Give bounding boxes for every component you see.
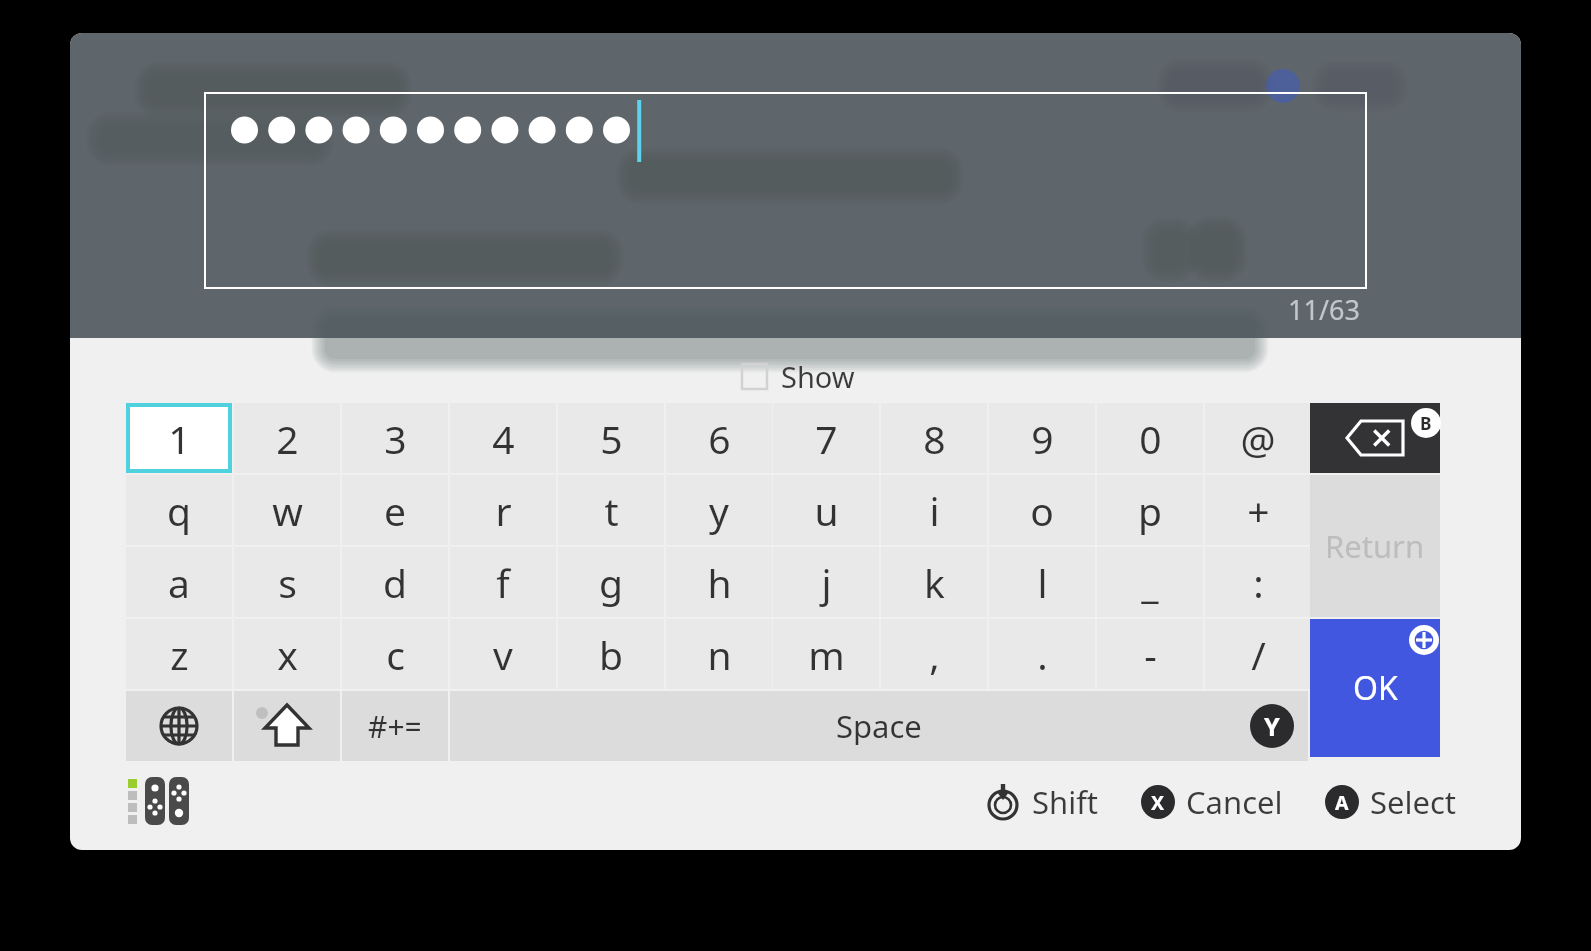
button[interactable]: h bbox=[666, 547, 772, 617]
button[interactable]: f bbox=[450, 547, 556, 617]
button[interactable]: 9 bbox=[989, 403, 1095, 473]
button[interactable]: OK bbox=[1310, 619, 1440, 757]
staticText: n bbox=[707, 628, 732, 681]
staticText: 3 bbox=[384, 412, 407, 465]
button[interactable]: 1 bbox=[126, 403, 232, 473]
staticText: 11/63 bbox=[1288, 291, 1360, 328]
staticText: 9 bbox=[1031, 412, 1054, 465]
button[interactable]: m bbox=[773, 619, 879, 689]
button[interactable]: e bbox=[342, 475, 448, 545]
button[interactable]: d bbox=[342, 547, 448, 617]
staticText: c bbox=[386, 628, 405, 681]
staticText: X bbox=[1151, 789, 1165, 816]
button[interactable]: t bbox=[558, 475, 664, 545]
button[interactable]: - bbox=[1097, 619, 1203, 689]
staticText: w bbox=[272, 484, 303, 537]
staticText: i bbox=[929, 484, 940, 537]
staticText: 4 bbox=[492, 412, 515, 465]
staticText: h bbox=[707, 556, 732, 609]
button[interactable]: k bbox=[881, 547, 987, 617]
button[interactable]: p bbox=[1097, 475, 1203, 545]
button[interactable]: 5 bbox=[558, 403, 664, 473]
button[interactable]: j bbox=[773, 547, 879, 617]
button[interactable]: b bbox=[558, 619, 664, 689]
staticText: Y bbox=[1264, 709, 1280, 743]
button[interactable]: . bbox=[989, 619, 1095, 689]
staticText: + bbox=[1247, 484, 1270, 537]
button[interactable]: g bbox=[558, 547, 664, 617]
button[interactable]: #+= bbox=[342, 691, 448, 761]
button[interactable]: Controllers bbox=[128, 775, 200, 827]
staticText: y bbox=[709, 484, 729, 537]
button[interactable]: : bbox=[1205, 547, 1311, 617]
staticText: - bbox=[1144, 628, 1157, 681]
button[interactable]: s bbox=[234, 547, 340, 617]
button[interactable]: 0 bbox=[1097, 403, 1203, 473]
staticText: Cancel bbox=[1186, 781, 1283, 823]
button[interactable]: @ bbox=[1205, 403, 1311, 473]
button[interactable]: c bbox=[342, 619, 448, 689]
button[interactable] bbox=[204, 92, 1367, 289]
staticText: 6 bbox=[708, 412, 731, 465]
staticText: OK bbox=[1353, 666, 1398, 710]
staticText: k bbox=[924, 556, 945, 609]
button[interactable]: Return bbox=[1310, 475, 1440, 617]
button[interactable]: n bbox=[666, 619, 772, 689]
button[interactable]: 2 bbox=[234, 403, 340, 473]
button[interactable]: Space bbox=[450, 691, 1308, 761]
staticText: j bbox=[821, 556, 832, 609]
staticText: 8 bbox=[923, 412, 946, 465]
button[interactable]: o bbox=[989, 475, 1095, 545]
button[interactable]: / bbox=[1205, 619, 1311, 689]
staticText: t bbox=[604, 484, 619, 537]
staticText: e bbox=[384, 484, 406, 537]
button[interactable]: y bbox=[666, 475, 772, 545]
button[interactable]: + bbox=[1205, 475, 1311, 545]
staticText: 1 bbox=[168, 412, 191, 465]
staticText: Shift bbox=[1032, 781, 1099, 823]
staticText: d bbox=[383, 556, 407, 609]
button[interactable]: 4 bbox=[450, 403, 556, 473]
button[interactable]: Backspace bbox=[1310, 403, 1440, 473]
button[interactable]: 7 bbox=[773, 403, 879, 473]
staticText: v bbox=[493, 628, 513, 681]
staticText: Select bbox=[1370, 781, 1457, 823]
button[interactable]: r bbox=[450, 475, 556, 545]
button[interactable]: u bbox=[773, 475, 879, 545]
button[interactable]: Shift bbox=[234, 691, 340, 761]
staticText: m bbox=[808, 628, 845, 681]
staticText: o bbox=[1030, 484, 1054, 537]
button[interactable]: q bbox=[126, 475, 232, 545]
staticText: f bbox=[496, 556, 510, 609]
staticText: l bbox=[1037, 556, 1048, 609]
button[interactable]: Show bbox=[737, 353, 859, 400]
staticText: q bbox=[167, 484, 191, 537]
staticText: . bbox=[1037, 628, 1048, 681]
staticText: 5 bbox=[600, 412, 623, 465]
button[interactable]: a bbox=[126, 547, 232, 617]
button[interactable]: l bbox=[989, 547, 1095, 617]
button[interactable]: 6 bbox=[666, 403, 772, 473]
button[interactable]: X bbox=[1141, 781, 1283, 823]
staticText: u bbox=[814, 484, 839, 537]
button[interactable]: Shift bbox=[985, 781, 1099, 823]
button[interactable]: 3 bbox=[342, 403, 448, 473]
staticText: x bbox=[277, 628, 298, 681]
button[interactable]: 8 bbox=[881, 403, 987, 473]
button[interactable]: Change keyboard language bbox=[126, 691, 232, 761]
staticText: b bbox=[599, 628, 623, 681]
button[interactable]: _ bbox=[1097, 547, 1203, 617]
button[interactable]: x bbox=[234, 619, 340, 689]
button[interactable]: i bbox=[881, 475, 987, 545]
button[interactable]: v bbox=[450, 619, 556, 689]
button[interactable]: , bbox=[881, 619, 987, 689]
button[interactable]: A bbox=[1325, 781, 1457, 823]
button[interactable]: z bbox=[126, 619, 232, 689]
button[interactable]: w bbox=[234, 475, 340, 545]
staticText: #+= bbox=[368, 706, 422, 747]
staticText: z bbox=[170, 628, 189, 681]
staticText: / bbox=[1251, 628, 1266, 681]
staticText: 0 bbox=[1139, 412, 1162, 465]
staticText: Return bbox=[1325, 525, 1425, 567]
staticText: B bbox=[1420, 412, 1432, 435]
